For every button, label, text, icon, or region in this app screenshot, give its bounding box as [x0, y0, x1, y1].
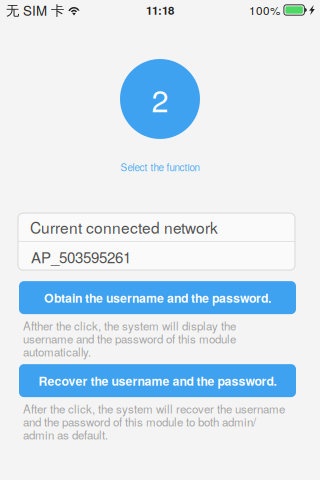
staticText: and the password of this module to both … [23, 413, 256, 430]
staticText: 无 SIM 卡 [6, 0, 64, 20]
staticText: AP_503595261 [31, 246, 131, 267]
button[interactable]: Obtain the username and the password. [19, 281, 296, 314]
staticText: 2 [151, 77, 168, 121]
staticText: 100% [249, 2, 280, 18]
staticText: Current connected network [30, 216, 218, 238]
staticText: 11:18 [146, 2, 174, 18]
staticText: Recover the username and the password. [38, 372, 276, 389]
staticText: username and the password of this module [23, 330, 236, 347]
staticText: automatically. [23, 343, 91, 360]
staticText: After the click, the system will recover… [23, 400, 285, 417]
staticText: Obtain the username and the password. [44, 289, 271, 306]
staticText: Afther the click, the system will displa… [23, 317, 236, 334]
staticText: admin as default. [23, 426, 108, 443]
button[interactable]: Recover the username and the password. [19, 364, 296, 397]
staticText: Select the function [120, 160, 199, 174]
